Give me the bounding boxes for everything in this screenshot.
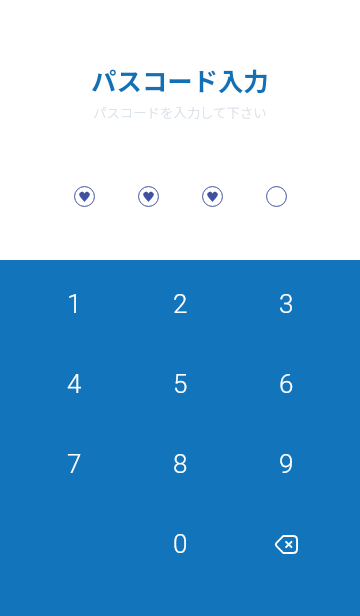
button[interactable]: 1 <box>21 264 127 344</box>
button[interactable]: Delete last digit <box>233 504 339 584</box>
button[interactable]: 0 <box>127 504 233 584</box>
button[interactable]: 5 <box>127 344 233 424</box>
staticText: パスコードを入力して下さい <box>93 102 267 121</box>
staticText: 5 <box>173 369 188 399</box>
button[interactable]: 6 <box>233 344 339 424</box>
button[interactable]: 8 <box>127 424 233 504</box>
staticText: 7 <box>67 449 82 479</box>
staticText: 6 <box>279 369 294 399</box>
staticText: 3 <box>279 289 294 319</box>
staticText: 8 <box>173 449 188 479</box>
button[interactable]: 9 <box>233 424 339 504</box>
button[interactable]: 7 <box>21 424 127 504</box>
button[interactable]: 3 <box>233 264 339 344</box>
staticText: 1 <box>67 289 82 319</box>
staticText: 2 <box>173 289 188 319</box>
staticText: 9 <box>279 449 294 479</box>
staticText: 0 <box>173 529 188 559</box>
button[interactable]: 4 <box>21 344 127 424</box>
staticText: 4 <box>67 369 82 399</box>
button[interactable]: 2 <box>127 264 233 344</box>
staticText: パスコード入力 <box>91 62 269 99</box>
